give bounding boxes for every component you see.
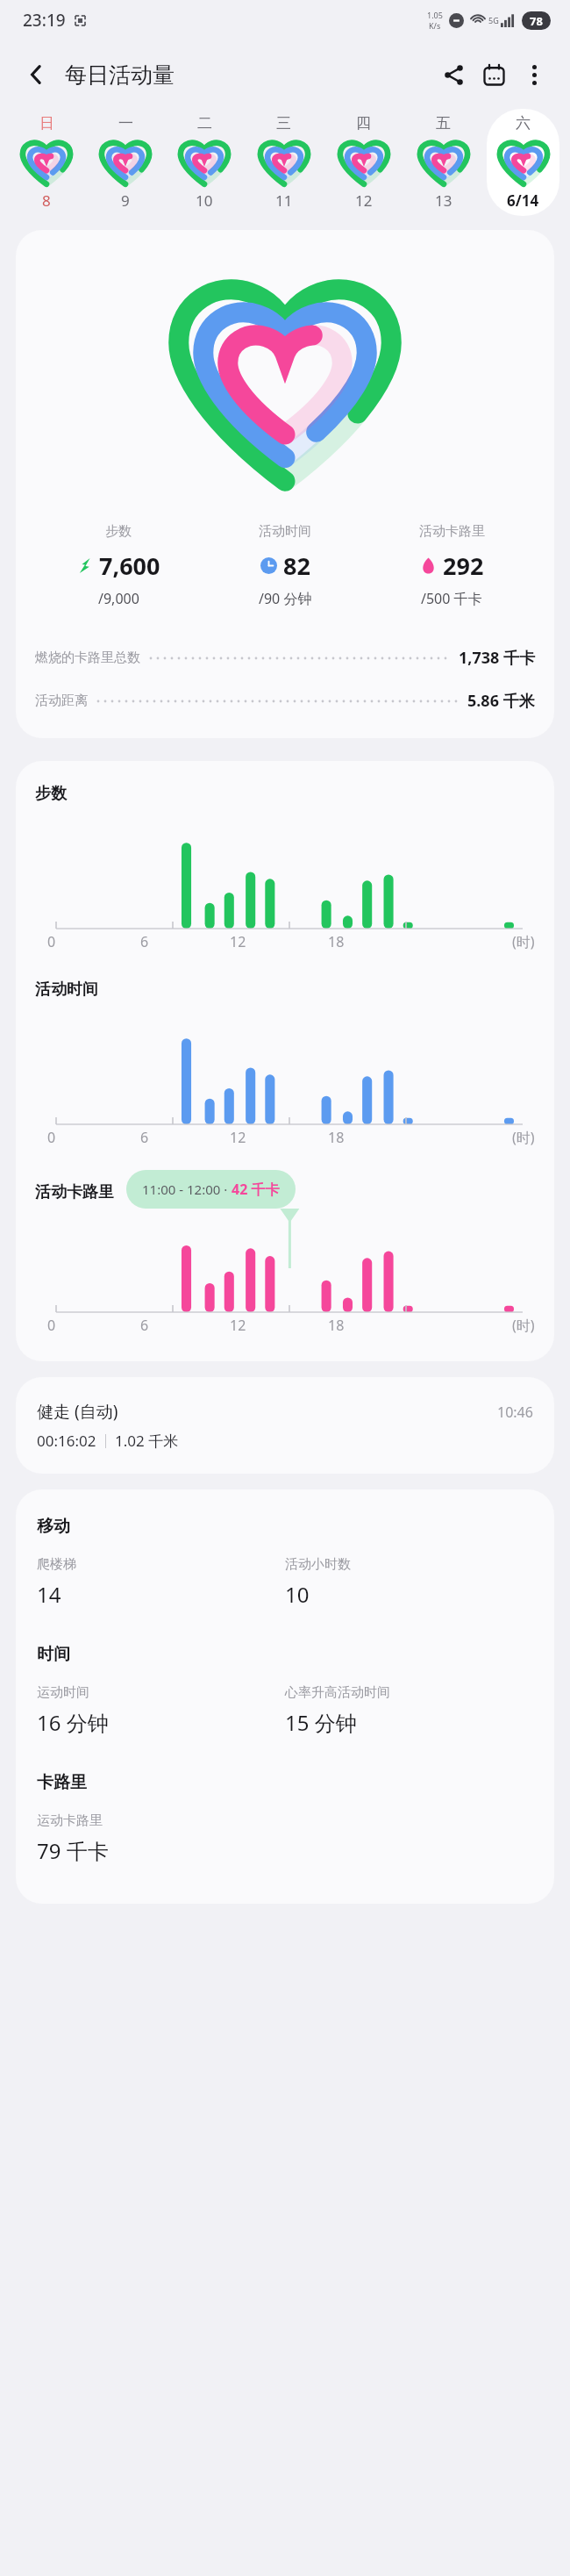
staticText: K/s	[429, 20, 441, 31]
staticText: 活动卡路里	[35, 1182, 114, 1202]
staticText: 23:19	[23, 9, 66, 32]
staticText: 步数	[35, 784, 67, 804]
staticText: 292	[443, 549, 484, 582]
staticText: 二	[197, 114, 212, 133]
staticText: 5G	[488, 15, 499, 25]
staticText: 活动卡路里	[419, 523, 485, 540]
staticText: 五	[436, 114, 451, 133]
staticText: 每日活动量	[65, 61, 175, 89]
button[interactable]: 日	[7, 109, 86, 216]
button[interactable]: More options	[514, 54, 554, 95]
staticText: 四	[356, 114, 371, 133]
button[interactable]: 五	[403, 109, 483, 216]
staticText: 0	[47, 1128, 56, 1147]
staticText: (时)	[512, 1128, 535, 1147]
staticText: 42 千卡	[232, 1180, 280, 1199]
staticText: /500 千卡	[421, 589, 482, 608]
staticText: 5.86 千米	[467, 690, 535, 712]
staticText: 15 分钟	[285, 1708, 357, 1737]
staticText: 79 千卡	[37, 1836, 109, 1865]
staticText: 运动时间	[37, 1684, 89, 1701]
staticText: 12	[230, 1316, 246, 1335]
staticText: 运动卡路里	[37, 1812, 103, 1829]
staticText: 卡路里	[37, 1772, 87, 1793]
staticText: 78	[530, 13, 543, 29]
staticText: 活动时间	[35, 979, 98, 1000]
staticText: 9	[121, 190, 130, 211]
staticText: 1.05	[427, 10, 443, 20]
staticText: 心率升高活动时间	[285, 1684, 390, 1701]
staticText: 活动时间	[259, 523, 311, 540]
staticText: 0	[47, 1316, 56, 1335]
button[interactable]: 四	[324, 109, 403, 216]
staticText: /9,000	[98, 589, 139, 608]
staticText: 6	[140, 1316, 149, 1335]
staticText: 0	[47, 932, 56, 951]
staticText: (时)	[512, 1316, 535, 1335]
staticText: 11	[275, 190, 293, 211]
staticText: 六	[516, 114, 531, 133]
button[interactable]: 活动距离	[35, 679, 535, 722]
staticText: 步数	[105, 523, 132, 540]
staticText: 活动小时数	[285, 1556, 351, 1573]
button[interactable]: 健走 (自动)	[16, 1377, 554, 1474]
staticText: 健走 (自动)	[37, 1400, 118, 1423]
staticText: 00:16:02	[37, 1431, 96, 1451]
staticText: 一	[118, 114, 133, 133]
button[interactable]: 燃烧的卡路里总数	[35, 636, 535, 679]
staticText: 12	[230, 932, 246, 951]
staticText: 移动	[37, 1516, 70, 1537]
staticText: 三	[276, 114, 291, 133]
staticText: 82	[283, 549, 310, 582]
staticText: 8	[42, 190, 51, 211]
staticText: 12	[230, 1128, 246, 1147]
staticText: 13	[435, 190, 452, 211]
staticText: 18	[328, 1316, 345, 1335]
staticText: /90 分钟	[259, 589, 312, 608]
staticText: 10	[285, 1580, 310, 1609]
staticText: 燃烧的卡路里总数	[35, 649, 140, 666]
staticText: 1.02 千米	[115, 1431, 179, 1451]
staticText: (时)	[512, 932, 535, 951]
staticText: 12	[355, 190, 373, 211]
staticText: 6	[140, 1128, 149, 1147]
staticText: 6	[140, 932, 149, 951]
button[interactable]: Back	[16, 54, 56, 95]
staticText: 活动距离	[35, 692, 88, 709]
button[interactable]: 六	[487, 109, 559, 216]
button[interactable]: 步数	[16, 230, 554, 738]
button[interactable]: Calendar	[474, 54, 514, 95]
staticText: 14	[37, 1580, 61, 1609]
staticText: 10	[196, 190, 213, 211]
staticText: 11:00 - 12:00 ·	[142, 1180, 232, 1198]
button[interactable]: 三	[244, 109, 324, 216]
staticText: 日	[39, 114, 54, 133]
staticText: 18	[328, 932, 345, 951]
staticText: 16 分钟	[37, 1708, 109, 1737]
staticText: 爬楼梯	[37, 1556, 76, 1573]
button[interactable]: 一	[86, 109, 165, 216]
staticText: 7,600	[99, 549, 160, 582]
staticText: 1,738 千卡	[459, 647, 535, 669]
button[interactable]: 二	[165, 109, 244, 216]
staticText: 10:46	[497, 1403, 533, 1422]
staticText: 18	[328, 1128, 345, 1147]
staticText: 时间	[37, 1644, 70, 1665]
staticText: 6/14	[507, 190, 539, 211]
button[interactable]: Share	[433, 54, 474, 95]
